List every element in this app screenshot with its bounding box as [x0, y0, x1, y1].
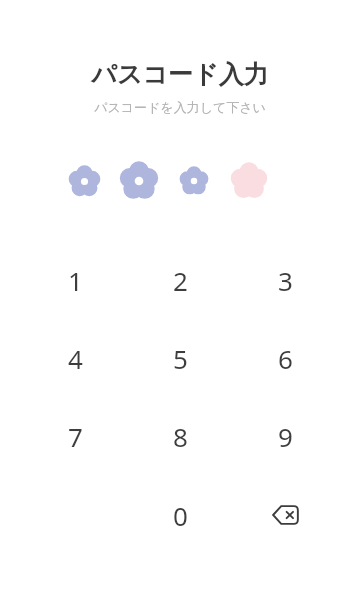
button[interactable]: 3 — [233, 241, 338, 319]
button[interactable]: 9 — [233, 397, 338, 475]
staticText: 6 — [278, 341, 293, 376]
staticText: 2 — [173, 263, 188, 298]
staticText: 5 — [173, 341, 188, 376]
staticText: 4 — [68, 341, 83, 376]
staticText: 0 — [173, 498, 188, 533]
staticText: 9 — [278, 419, 293, 454]
staticText: 8 — [173, 419, 188, 454]
button[interactable]: Backspace — [233, 475, 338, 555]
staticText: 1 — [68, 263, 83, 298]
button[interactable]: 1 — [23, 241, 128, 319]
button[interactable]: 0 — [128, 475, 233, 555]
button[interactable]: 5 — [128, 319, 233, 397]
button[interactable]: 4 — [23, 319, 128, 397]
staticText: 7 — [68, 419, 83, 454]
staticText: パスコードを入力して下さい — [0, 99, 360, 115]
staticText: 3 — [278, 263, 293, 298]
button[interactable]: 8 — [128, 397, 233, 475]
button[interactable]: 7 — [23, 397, 128, 475]
staticText: パスコード入力 — [0, 59, 360, 90]
button[interactable]: 2 — [128, 241, 233, 319]
button[interactable]: 6 — [233, 319, 338, 397]
